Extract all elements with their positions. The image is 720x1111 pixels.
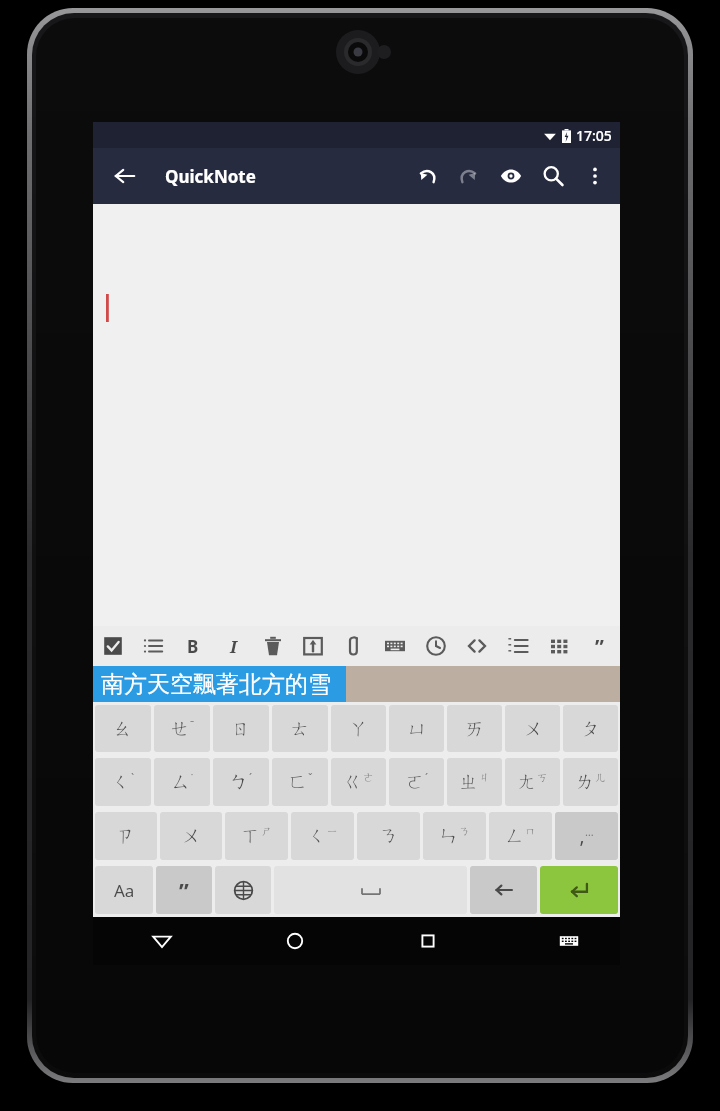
button[interactable]: ㄝ — [154, 705, 210, 752]
staticText: ㄣ — [439, 824, 459, 848]
staticText: ㄅ — [229, 770, 249, 794]
button[interactable]: ㄙ — [154, 758, 210, 806]
staticText: ㄨ — [181, 824, 201, 848]
staticText: , — [579, 823, 585, 849]
staticText: ㄓ — [459, 770, 479, 794]
button[interactable]: ㄖ — [213, 705, 269, 752]
staticText: ㄑ — [307, 824, 327, 848]
staticText: … — [585, 824, 594, 839]
staticText: Aa — [114, 879, 135, 902]
button[interactable]: Aa — [95, 866, 153, 914]
button[interactable] — [93, 204, 620, 626]
button[interactable]: Back — [135, 918, 189, 964]
button[interactable]: ㄌ — [563, 758, 618, 806]
button[interactable]: Delete — [253, 626, 293, 666]
staticText: ㄆ — [581, 717, 601, 741]
staticText: ㄙ — [171, 770, 191, 794]
button[interactable]: ㄛ — [389, 758, 444, 806]
staticText: ˉ — [190, 717, 195, 732]
button[interactable]: Search — [532, 152, 574, 200]
staticText: 17:05 — [576, 126, 612, 145]
button[interactable]: ㄞ — [447, 705, 502, 752]
button[interactable]: ㄋ — [357, 812, 420, 860]
button[interactable]: Bullet list — [133, 626, 173, 666]
staticText: ㄎ — [537, 770, 549, 784]
staticText: ㄝ — [170, 717, 190, 741]
staticText: ㄗ — [116, 824, 136, 848]
button[interactable]: Keyboard — [542, 918, 596, 964]
button[interactable]: More options — [574, 152, 616, 200]
staticText: ㄥ — [505, 824, 525, 848]
button[interactable]: ㄑ — [291, 812, 354, 860]
button[interactable]: Code — [456, 626, 497, 666]
staticText: ㄠ — [113, 717, 133, 741]
button[interactable]: Italic — [213, 626, 253, 666]
staticText: ㄩ — [407, 717, 427, 741]
button[interactable]: ㄍ — [331, 758, 386, 806]
staticText: ˊ — [425, 770, 429, 785]
button[interactable]: ㄤ — [505, 758, 560, 806]
staticText: ㄇ — [525, 824, 537, 838]
staticText: ㄐ — [479, 770, 491, 784]
staticText: ㄜ — [363, 770, 375, 784]
button[interactable]: Recents — [401, 918, 455, 964]
button[interactable]: ㄆ — [563, 705, 618, 752]
button[interactable]: Preview — [490, 152, 532, 200]
button[interactable]: Backspace — [470, 866, 537, 914]
staticText: ˋ — [131, 770, 135, 785]
button[interactable]: ㄠ — [95, 705, 151, 752]
button[interactable]: ㄈ — [272, 758, 328, 806]
staticText: ㄧ — [327, 824, 339, 838]
button[interactable]: Redo — [448, 152, 490, 200]
button[interactable]: Export — [293, 626, 333, 666]
staticText: ㄤ — [517, 770, 537, 794]
staticText: ㄦ — [595, 770, 607, 784]
button[interactable]: ㄥ — [489, 812, 552, 860]
staticText: ㄖ — [231, 717, 251, 741]
button[interactable]: Quote — [156, 866, 212, 914]
button[interactable]: ㄣ — [423, 812, 486, 860]
staticText: 南方天空飄著北方的雪 — [101, 670, 331, 699]
button[interactable]: Timestamp — [415, 626, 456, 666]
button[interactable]: ㄒ — [225, 812, 288, 860]
button[interactable]: ㄨ — [505, 705, 560, 752]
button[interactable]: Grid — [538, 626, 579, 666]
staticText: ㄌ — [575, 770, 595, 794]
button[interactable]: Bold — [173, 626, 213, 666]
button[interactable]: Keyboard — [374, 626, 415, 666]
button[interactable]: ㄚ — [331, 705, 386, 752]
button[interactable]: Space — [274, 866, 467, 914]
button[interactable]: 南方天空飄著北方的雪 — [93, 666, 346, 702]
button[interactable]: Numbered list — [497, 626, 538, 666]
staticText: B — [187, 635, 199, 658]
staticText: ˊ — [249, 770, 253, 785]
button[interactable]: ㄅ — [213, 758, 269, 806]
staticText: ˙ — [191, 770, 194, 785]
staticText: ㄕ — [261, 824, 273, 838]
button[interactable]: Change language — [215, 866, 271, 914]
staticText: ㄨ — [523, 717, 543, 741]
button[interactable]: ㄑ — [95, 758, 151, 806]
button[interactable]: Quote — [579, 626, 620, 666]
staticText: ㄞ — [465, 717, 485, 741]
button[interactable]: ㄗ — [95, 812, 157, 860]
button[interactable]: Attach — [333, 626, 374, 666]
staticText: ㄛ — [405, 770, 425, 794]
button[interactable]: Checkbox — [93, 626, 133, 666]
button[interactable]: Back — [103, 154, 147, 198]
staticText: ㄋ — [459, 824, 471, 838]
staticText: ㄈ — [288, 770, 308, 794]
button[interactable]: , — [555, 812, 618, 860]
button[interactable]: Undo — [406, 152, 448, 200]
staticText: ㄊ — [290, 717, 310, 741]
button[interactable]: Home — [268, 918, 322, 964]
staticText: I — [230, 635, 237, 658]
button[interactable]: Enter — [540, 866, 618, 914]
staticText: ” — [179, 875, 189, 905]
button[interactable]: ㄊ — [272, 705, 328, 752]
button[interactable]: ㄓ — [447, 758, 502, 806]
button[interactable]: ㄨ — [160, 812, 222, 860]
staticText: ㄚ — [349, 717, 369, 741]
button[interactable]: ㄩ — [389, 705, 444, 752]
staticText: ㄋ — [379, 824, 399, 848]
